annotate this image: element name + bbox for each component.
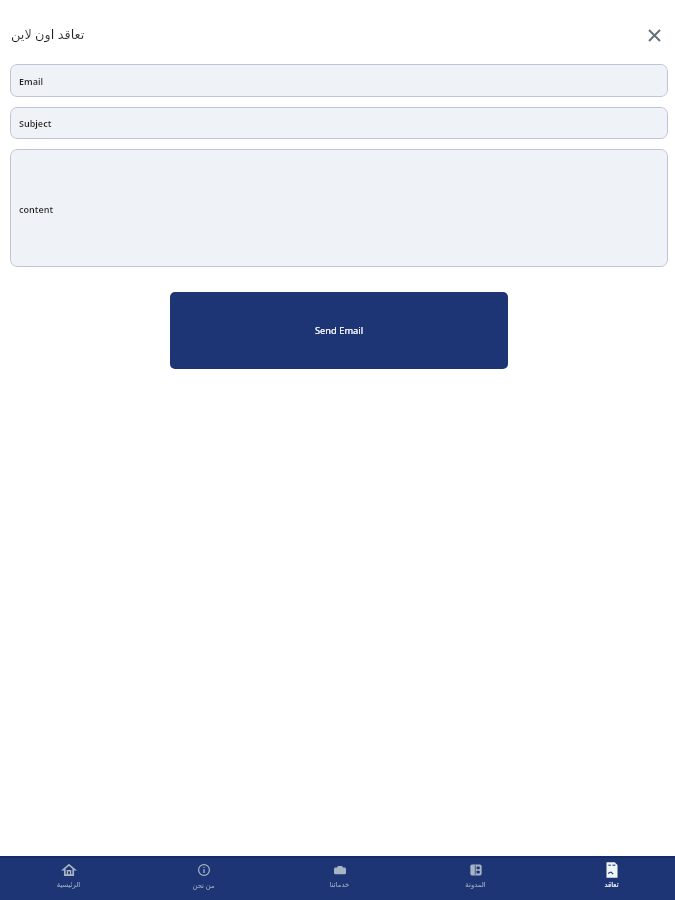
button[interactable]: content	[10, 149, 668, 267]
button[interactable]: Subject	[10, 107, 668, 139]
button[interactable]: Close	[638, 19, 670, 51]
button[interactable]: Send Email	[170, 292, 508, 369]
button[interactable]: خدماتنا	[272, 856, 407, 900]
staticText: content	[19, 203, 54, 215]
staticText: Send Email	[315, 324, 364, 337]
staticText: الرئيسية	[1, 881, 136, 889]
staticText: تعاقد اون لاين	[11, 25, 85, 43]
staticText: Email	[19, 75, 44, 87]
button[interactable]: Email	[10, 64, 668, 97]
staticText: Subject	[19, 117, 52, 129]
button[interactable]: من نحن	[136, 856, 271, 900]
staticText: من نحن	[136, 881, 271, 890]
staticText: المدونة	[408, 881, 543, 889]
staticText: تعاقد	[544, 881, 675, 889]
button[interactable]: الرئيسية	[1, 856, 136, 900]
staticText: خدماتنا	[272, 881, 407, 889]
button[interactable]: المدونة	[408, 856, 543, 900]
button[interactable]: تعاقد	[544, 856, 675, 900]
